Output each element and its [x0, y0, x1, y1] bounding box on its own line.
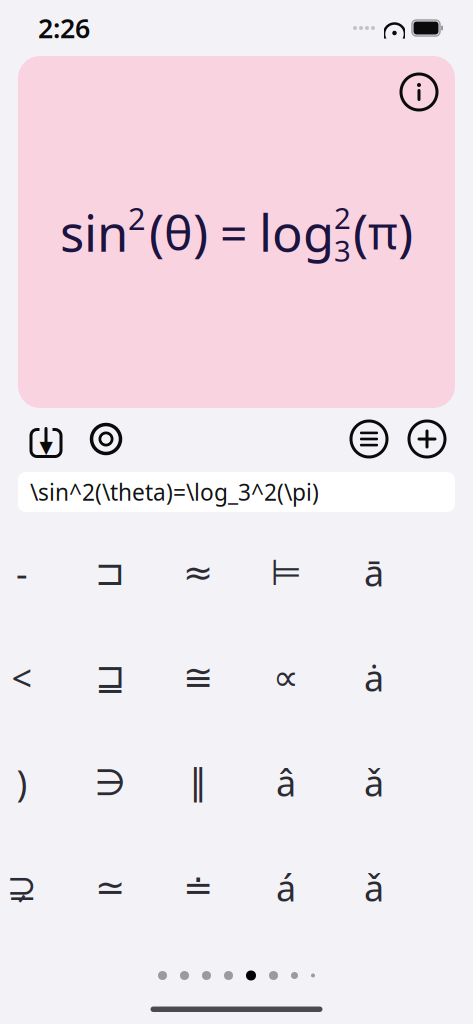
staticText: -	[16, 549, 28, 596]
staticText: 3	[334, 231, 351, 270]
button[interactable]: Insert symbol	[154, 625, 242, 730]
staticText: π	[368, 202, 398, 262]
staticText: ▼	[39, 437, 52, 457]
staticText: ≃	[95, 867, 125, 908]
button[interactable]: Insert symbol	[242, 520, 330, 625]
staticText: ≅	[183, 657, 213, 698]
button[interactable]: Insert symbol	[0, 835, 66, 940]
staticText: ǎ	[364, 759, 384, 806]
staticText: 2	[334, 198, 351, 237]
staticText: ⊒	[95, 657, 125, 698]
button[interactable]: Insert symbol	[0, 730, 66, 835]
button[interactable]: History	[343, 413, 395, 465]
staticText: ǎ	[364, 864, 384, 911]
staticText: ⊨	[270, 552, 301, 593]
button[interactable]: Insert symbol	[154, 520, 242, 625]
staticText: (	[149, 198, 164, 266]
button[interactable]: \sin^2(\theta)=\log_3^2(\pi)	[18, 472, 455, 512]
staticText: =	[220, 200, 247, 264]
staticText: 2:26	[38, 10, 90, 46]
staticText: log	[259, 198, 334, 266]
button[interactable]: Insert symbol	[330, 520, 418, 625]
staticText: á	[276, 864, 296, 911]
button[interactable]: Add	[401, 413, 453, 465]
staticText: â	[276, 759, 296, 806]
staticText: ≐	[183, 867, 213, 908]
button[interactable]: Insert symbol	[0, 625, 66, 730]
button[interactable]: Insert symbol	[330, 730, 418, 835]
button[interactable]: Info	[395, 68, 443, 116]
staticText: )	[193, 198, 208, 266]
staticText: ȧ	[364, 654, 384, 701]
staticText: ā	[364, 549, 384, 596]
button[interactable]: Insert symbol	[154, 730, 242, 835]
staticText: )	[398, 198, 413, 266]
button[interactable]: Insert symbol	[66, 625, 154, 730]
button[interactable]: Insert symbol	[330, 835, 418, 940]
button[interactable]: Insert symbol	[0, 520, 66, 625]
button[interactable]: Insert symbol	[66, 730, 154, 835]
staticText: θ	[164, 200, 193, 264]
button[interactable]: Save	[20, 413, 72, 465]
staticText: \sin^2(\theta)=\log_3^2(\pi)	[30, 477, 319, 507]
button[interactable]: Insert symbol	[66, 835, 154, 940]
staticText: sin	[60, 198, 128, 266]
button[interactable]: Insert symbol	[66, 520, 154, 625]
button[interactable]: Insert symbol	[154, 835, 242, 940]
staticText: <	[11, 654, 32, 701]
staticText: ⊋	[7, 867, 37, 908]
button[interactable]: Insert symbol	[242, 835, 330, 940]
staticText: (	[353, 198, 368, 266]
staticText: ∋	[94, 762, 125, 803]
button[interactable]: Insert symbol	[330, 625, 418, 730]
staticText: ∥	[189, 762, 207, 803]
staticText: ⊐	[95, 552, 125, 593]
staticText: 2	[128, 198, 146, 238]
button[interactable]: Insert symbol	[242, 730, 330, 835]
button[interactable]: Settings	[80, 413, 132, 465]
staticText: ≈	[183, 552, 213, 593]
staticText: ∝	[273, 657, 299, 698]
button[interactable]: Insert symbol	[242, 625, 330, 730]
staticText: )	[16, 759, 27, 806]
